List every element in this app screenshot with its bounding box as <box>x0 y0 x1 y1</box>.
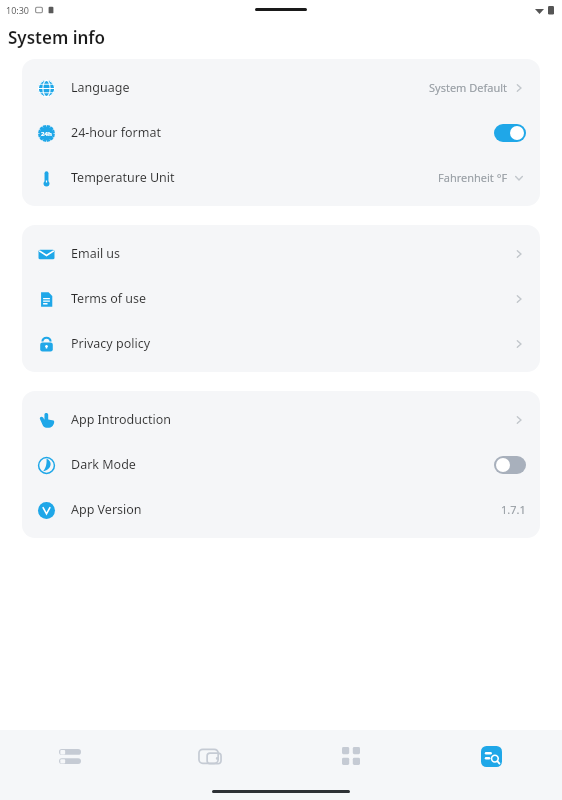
button[interactable]: Settings <box>421 730 562 782</box>
button[interactable]: List <box>0 730 140 782</box>
staticText: 10:30 <box>6 4 30 16</box>
staticText: System Default <box>429 80 508 95</box>
staticText: System info <box>8 26 106 49</box>
staticText: Terms of use <box>71 290 147 307</box>
staticText: 24-hour format <box>71 124 161 141</box>
staticText: Email us <box>71 245 121 262</box>
staticText: 1.7.1 <box>501 502 526 517</box>
staticText: Fahrenheit °F <box>438 170 508 185</box>
button[interactable]: Privacy policy <box>22 321 540 366</box>
staticText: App Introduction <box>71 411 172 428</box>
button[interactable]: Temperature Unit <box>22 155 540 200</box>
button[interactable]: On <box>494 124 526 142</box>
button[interactable]: Wallet <box>140 730 280 782</box>
button[interactable]: Language <box>22 65 540 110</box>
button[interactable]: Off <box>494 456 526 474</box>
button[interactable]: Email us <box>22 231 540 276</box>
staticText: Temperature Unit <box>71 169 175 186</box>
button[interactable]: Terms of use <box>22 276 540 321</box>
button[interactable]: Grid <box>280 730 421 782</box>
staticText: Privacy policy <box>71 335 151 352</box>
button[interactable]: Dark Mode <box>22 442 540 487</box>
button[interactable]: 24h <box>22 110 540 155</box>
button[interactable]: App Version <box>22 487 540 532</box>
staticText: Dark Mode <box>71 456 136 473</box>
staticText: Language <box>71 79 130 96</box>
staticText: App Version <box>71 501 142 518</box>
staticText: 24h <box>41 130 52 138</box>
button[interactable]: App Introduction <box>22 397 540 442</box>
